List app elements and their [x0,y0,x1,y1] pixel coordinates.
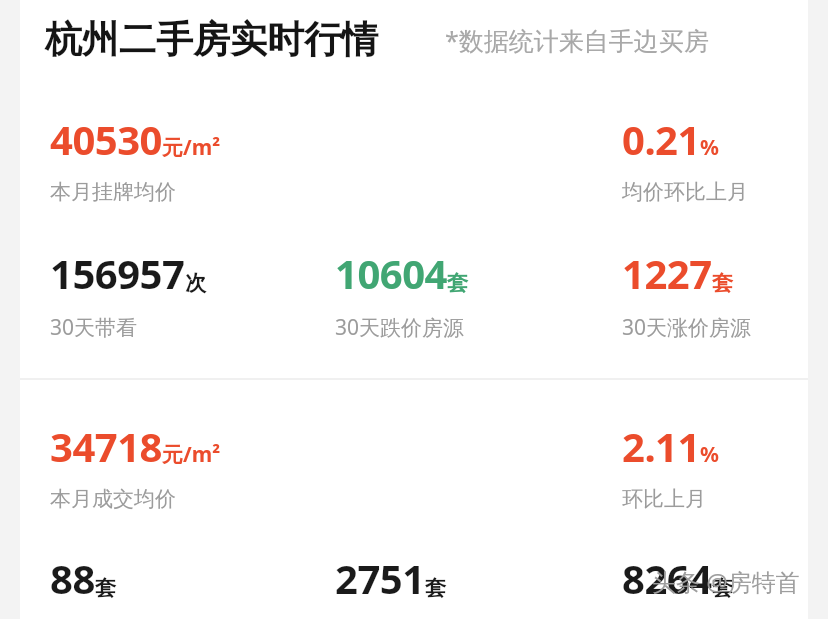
button[interactable]: 2.11 [622,419,719,512]
staticText: 40530 [50,112,162,166]
staticText: 套 [95,575,116,601]
button[interactable]: 1227 [622,246,752,342]
staticText: *数据统计来自手边买房 [445,23,709,57]
staticText: 30天跌价房源 [335,313,465,342]
button[interactable]: 88 [50,551,134,619]
staticText: 套 [447,270,468,296]
staticText: 套 [712,575,733,601]
staticText: 156957 [50,246,185,300]
button[interactable]: 0.21 [622,112,748,205]
staticText: 34718 [50,419,162,473]
staticText: 2.11 [622,419,700,473]
button[interactable]: 8264 [622,551,733,619]
staticText: 次 [185,270,206,296]
staticText: % [700,440,719,469]
staticText: 套 [425,575,446,601]
staticText: % [700,133,719,162]
staticText: 头条 @房特首 [652,565,800,598]
staticText: 本月成交均价 [50,486,176,512]
staticText: 1227 [622,246,712,300]
staticText: 30天带看 [50,313,138,342]
button[interactable]: 2751 [335,551,446,619]
staticText: 元/m² [162,133,221,162]
staticText: 本月挂牌均价 [50,179,176,205]
staticText: 环比上月 [622,486,706,512]
staticText: 0.21 [622,112,700,166]
staticText: 套 [712,270,733,296]
staticText: 杭州二手房实时行情 [45,16,378,63]
staticText: 2751 [335,551,425,605]
staticText: 元/m² [162,440,221,469]
staticText: 均价环比上月 [622,179,748,205]
staticText: 30天涨价房源 [622,313,752,342]
button[interactable]: 10604 [335,246,468,342]
button[interactable]: 40530 [50,112,221,205]
button[interactable]: 156957 [50,246,206,342]
staticText: 8264 [622,551,712,605]
button[interactable]: 34718 [50,419,221,512]
staticText: 10604 [335,246,447,300]
staticText: 88 [50,551,95,605]
